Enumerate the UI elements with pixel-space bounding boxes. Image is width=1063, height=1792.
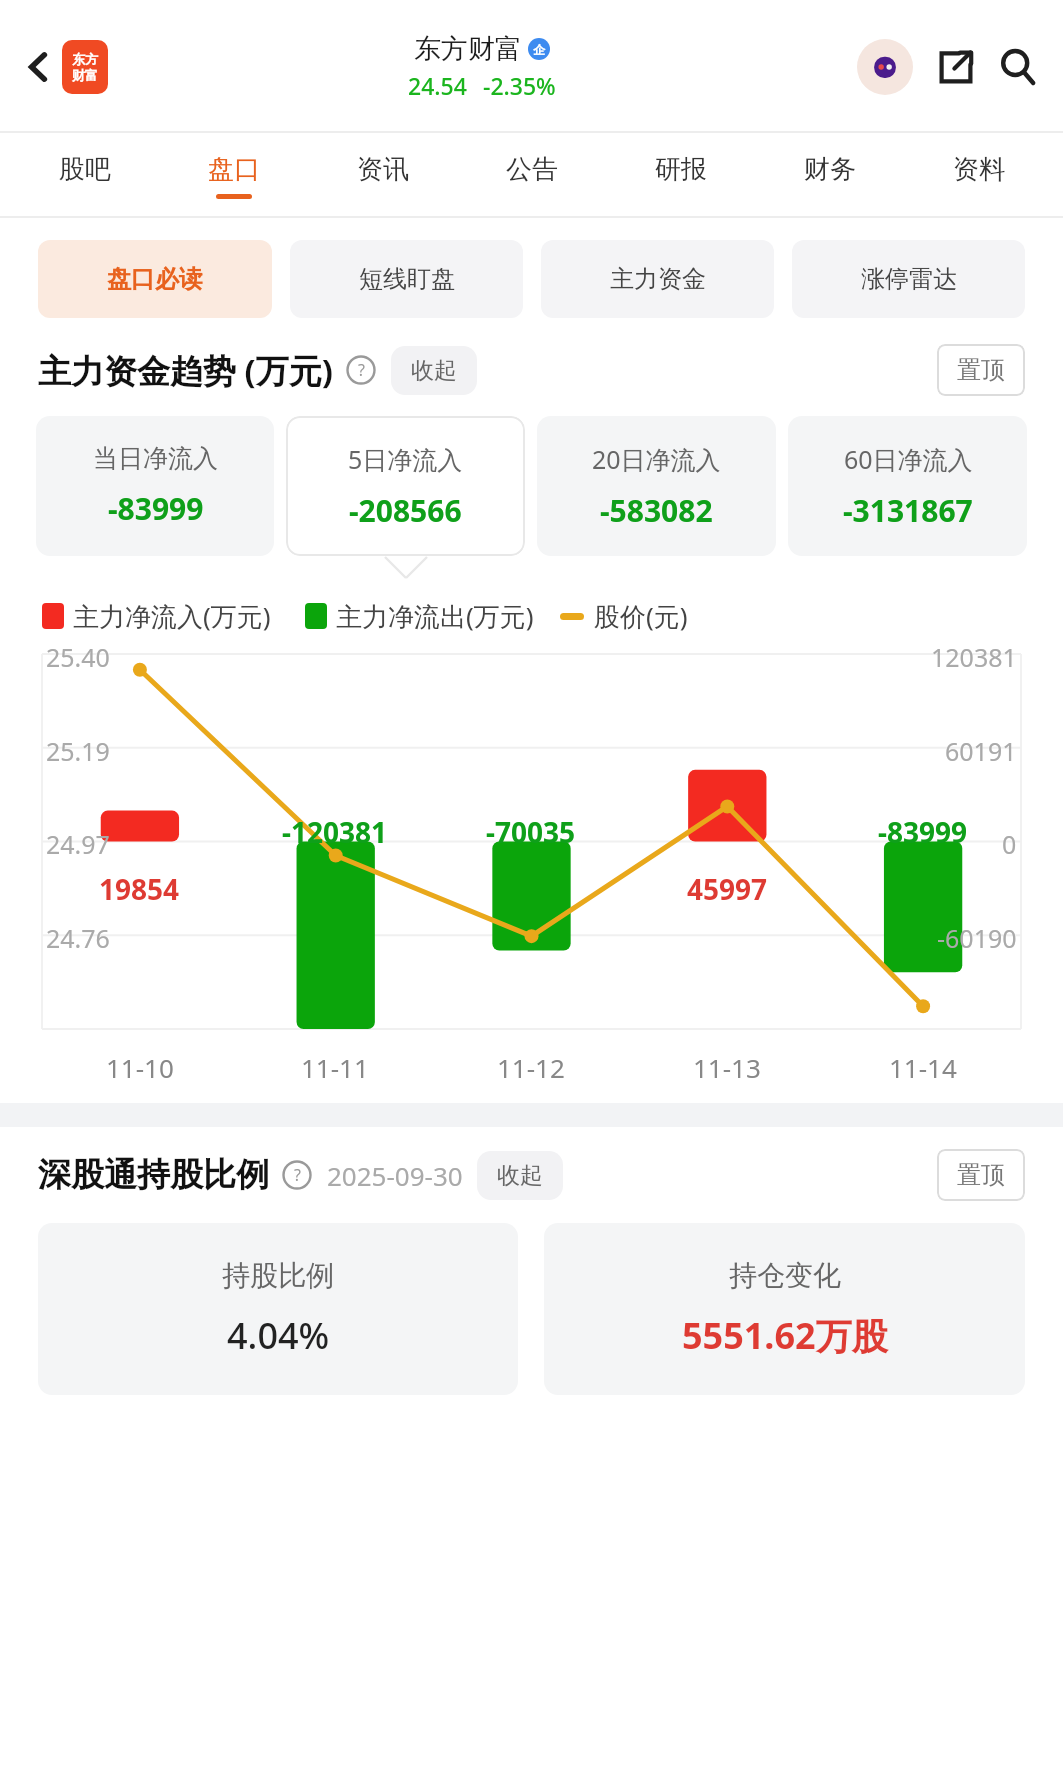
staticText: -2.35%	[483, 70, 556, 101]
staticText: 主力资金趋势 (万元)	[38, 348, 333, 393]
button[interactable]: 盘口	[159, 133, 308, 218]
staticText: 11-13	[693, 1050, 761, 1085]
staticText: 收起	[411, 356, 457, 385]
button[interactable]: 涨停雷达	[792, 240, 1025, 318]
staticText: 公告	[506, 153, 558, 186]
staticText: -60190	[937, 921, 1017, 955]
staticText: 60日净流入	[844, 442, 973, 476]
button[interactable]: 当日净流入	[36, 416, 274, 556]
button[interactable]: 股吧	[10, 133, 159, 218]
button[interactable]: 收起	[477, 1151, 563, 1200]
button[interactable]: 盘口必读	[38, 240, 272, 318]
staticText: -70035	[486, 813, 576, 851]
staticText: 24.54	[408, 70, 467, 101]
staticText: 涨停雷达	[861, 264, 957, 294]
staticText: -583082	[600, 490, 713, 531]
button[interactable]: 60日净流入	[788, 416, 1027, 556]
staticText: 财富	[72, 67, 98, 83]
staticText: -3131867	[843, 490, 973, 531]
button[interactable]: Search	[993, 42, 1043, 92]
staticText: 120381	[931, 640, 1017, 674]
staticText: 20日净流入	[592, 442, 721, 476]
staticText: -83999	[878, 813, 968, 851]
staticText: 持股比例	[222, 1258, 334, 1293]
staticText: -208566	[349, 490, 462, 531]
button[interactable]: Share	[931, 42, 981, 92]
staticText: 45997	[687, 870, 768, 908]
button[interactable]: 持仓变化	[544, 1223, 1025, 1395]
staticText: ?	[294, 1164, 301, 1186]
staticText: 东方财富	[414, 32, 522, 66]
button[interactable]: 置顶	[937, 1149, 1025, 1201]
staticText: 持仓变化	[729, 1258, 841, 1293]
staticText: 11-11	[301, 1050, 369, 1085]
staticText: 主力净流入(万元)	[73, 598, 271, 634]
button[interactable]: Help	[345, 354, 377, 386]
staticText: 企	[533, 42, 545, 57]
button[interactable]: 东方财富	[62, 40, 108, 94]
staticText: 盘口	[208, 153, 260, 186]
staticText: 24.97	[46, 827, 110, 861]
staticText: 25.19	[46, 734, 110, 768]
staticText: 19854	[99, 870, 180, 908]
button[interactable]: 5日净流入	[286, 416, 525, 556]
button[interactable]: 持股比例	[38, 1223, 518, 1395]
button[interactable]: Back	[14, 43, 62, 91]
button[interactable]: 资料	[904, 133, 1053, 218]
staticText: 11-14	[889, 1050, 957, 1085]
staticText: 深股通持股比例	[38, 1154, 269, 1196]
staticText: 置顶	[957, 355, 1005, 385]
staticText: 25.40	[46, 640, 110, 674]
staticText: ?	[358, 359, 365, 381]
staticText: 财务	[804, 153, 856, 186]
staticText: 主力净流出(万元)	[336, 598, 534, 634]
staticText: 24.76	[46, 921, 110, 955]
staticText: 4.04%	[227, 1311, 330, 1360]
button[interactable]: 资讯	[308, 133, 457, 218]
staticText: 5551.62万股	[682, 1311, 888, 1360]
button[interactable]: 短线盯盘	[290, 240, 523, 318]
staticText: -120381	[282, 813, 388, 851]
button[interactable]: 财务	[755, 133, 904, 218]
button[interactable]: Help	[281, 1159, 313, 1191]
staticText: 股吧	[59, 153, 111, 186]
staticText: 11-12	[497, 1050, 565, 1085]
staticText: -83999	[108, 488, 204, 529]
button[interactable]: 收起	[391, 346, 477, 395]
staticText: 5日净流入	[348, 442, 463, 476]
staticText: 11-10	[106, 1050, 174, 1085]
button[interactable]: 公告	[457, 133, 606, 218]
staticText: 股价(元)	[594, 598, 688, 634]
staticText: 东方	[72, 51, 98, 67]
staticText: 资讯	[357, 153, 409, 186]
button[interactable]: 置顶	[937, 344, 1025, 396]
staticText: 0	[1002, 827, 1017, 861]
staticText: 盘口必读	[107, 264, 203, 294]
button[interactable]: 主力资金	[541, 240, 774, 318]
staticText: 资料	[953, 153, 1005, 186]
staticText: 研报	[655, 153, 707, 186]
button[interactable]: 研报	[606, 133, 755, 218]
staticText: 主力资金	[610, 264, 706, 294]
staticText: 2025-09-30	[327, 1158, 463, 1193]
staticText: 当日净流入	[93, 443, 218, 474]
staticText: 60191	[945, 734, 1017, 768]
staticText: 置顶	[957, 1160, 1005, 1190]
button[interactable]: 20日净流入	[537, 416, 776, 556]
button[interactable]: Profile	[857, 39, 913, 95]
staticText: 短线盯盘	[359, 264, 455, 294]
staticText: 收起	[497, 1161, 543, 1190]
